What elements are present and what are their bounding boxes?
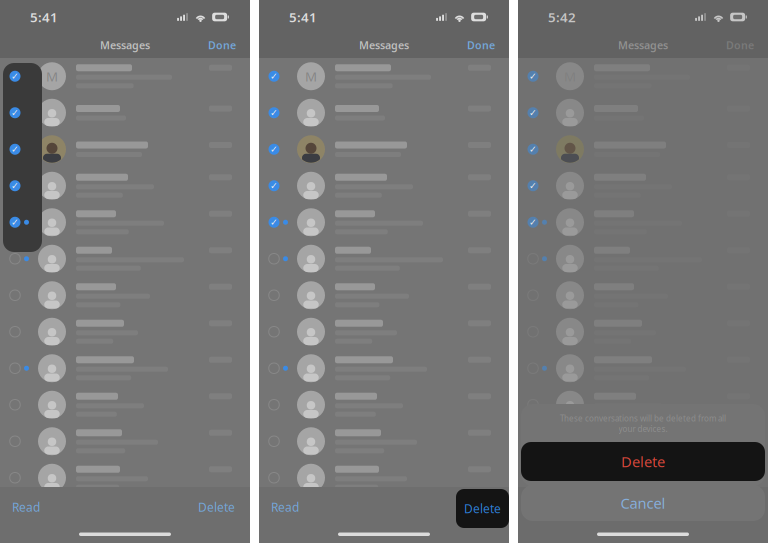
button[interactable] (0, 423, 250, 459)
button[interactable]: ✓ (259, 58, 509, 94)
button[interactable]: Read (0, 492, 40, 522)
button[interactable]: Delete (521, 442, 765, 481)
button[interactable]: ✓ (0, 131, 250, 167)
button[interactable]: Done (467, 33, 509, 57)
button[interactable] (259, 240, 509, 277)
button[interactable]: Read (259, 492, 299, 522)
staticText: ✓ (270, 217, 278, 228)
button[interactable]: ✓ (0, 167, 250, 204)
staticText: ✓ (270, 180, 278, 191)
button[interactable] (0, 459, 250, 496)
button[interactable] (518, 313, 768, 350)
staticText: ✓ (11, 107, 19, 118)
staticText: Done (208, 38, 236, 52)
staticText: ✓ (270, 71, 278, 82)
staticText: M (46, 67, 58, 85)
staticText: Delete (621, 452, 665, 471)
staticText: ✓ (11, 217, 19, 228)
staticText: Messages (359, 38, 409, 52)
staticText: 5:41 (30, 8, 58, 26)
button[interactable] (518, 277, 768, 313)
staticText: Read (12, 499, 40, 515)
button[interactable]: ✓ (259, 167, 509, 204)
button[interactable] (518, 459, 768, 496)
button[interactable]: ✓ (0, 58, 250, 94)
button[interactable]: Done (208, 33, 250, 57)
button[interactable] (518, 386, 768, 423)
button[interactable]: Done (726, 33, 768, 57)
button[interactable] (518, 423, 768, 459)
staticText: ✓ (529, 144, 537, 155)
button[interactable]: ✓ (259, 94, 509, 131)
staticText: Delete (464, 500, 501, 516)
button[interactable]: ✓ (518, 94, 768, 131)
staticText: 5:42 (548, 8, 576, 26)
staticText: ✓ (270, 107, 278, 118)
staticText: ✓ (11, 71, 19, 82)
staticText: Done (467, 38, 495, 52)
button[interactable]: ✓ (518, 167, 768, 204)
button[interactable] (259, 423, 509, 459)
button[interactable]: Cancel (521, 485, 765, 521)
staticText: ✓ (270, 144, 278, 155)
button[interactable] (518, 350, 768, 386)
button[interactable]: ✓ (518, 131, 768, 167)
button[interactable] (0, 313, 250, 350)
button[interactable] (259, 386, 509, 423)
staticText: ✓ (529, 180, 537, 191)
staticText: Messages (100, 38, 150, 52)
staticText: Read (271, 499, 299, 515)
button[interactable]: ✓ (259, 131, 509, 167)
button[interactable]: ✓ (518, 58, 768, 94)
staticText: Done (726, 38, 754, 52)
button[interactable]: Delete (456, 489, 509, 528)
staticText: ✓ (529, 107, 537, 118)
button[interactable]: ✓ (518, 204, 768, 240)
button[interactable] (0, 277, 250, 313)
button[interactable] (0, 350, 250, 386)
button[interactable] (259, 459, 509, 496)
button[interactable]: ✓ (0, 94, 250, 131)
staticText: ✓ (529, 217, 537, 228)
staticText: ✓ (11, 217, 19, 228)
staticText: Messages (618, 38, 668, 52)
button[interactable] (0, 240, 250, 277)
button[interactable] (259, 350, 509, 386)
staticText: ✓ (11, 107, 19, 118)
button[interactable]: Delete (198, 492, 250, 522)
staticText: Delete (198, 499, 235, 515)
staticText: ✓ (11, 144, 19, 155)
staticText: ✓ (11, 180, 19, 191)
button[interactable] (0, 386, 250, 423)
staticText: 5:41 (289, 8, 317, 26)
button[interactable]: ✓ (0, 204, 250, 240)
button[interactable]: ✓ (259, 204, 509, 240)
button[interactable] (518, 240, 768, 277)
staticText: ✓ (11, 180, 19, 191)
button[interactable] (259, 313, 509, 350)
staticText: ✓ (529, 71, 537, 82)
staticText: your devices. (618, 424, 667, 434)
staticText: ✓ (11, 71, 19, 82)
staticText: Cancel (620, 493, 665, 513)
staticText: M (305, 67, 317, 85)
button[interactable] (259, 277, 509, 313)
staticText: ✓ (11, 144, 19, 155)
staticText: These conversations will be deleted from… (560, 413, 726, 424)
